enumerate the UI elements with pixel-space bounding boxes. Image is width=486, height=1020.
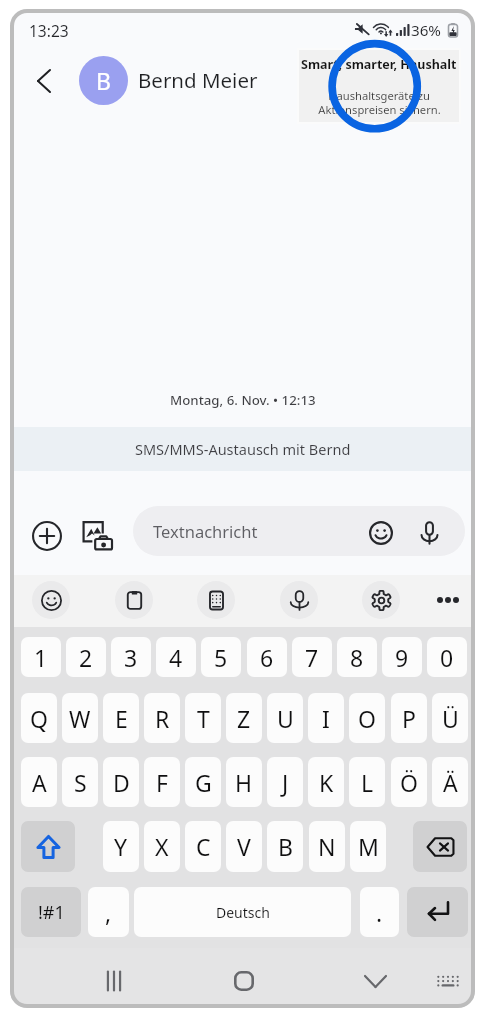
- button[interactable]: L: [349, 757, 385, 807]
- staticText: L: [361, 767, 374, 798]
- button[interactable]: S: [62, 757, 98, 807]
- button[interactable]: Ü: [432, 693, 468, 743]
- staticText: 0: [440, 642, 454, 673]
- staticText: Ä: [443, 767, 458, 798]
- button[interactable]: 2: [66, 637, 106, 677]
- button[interactable]: Voice typing: [280, 581, 318, 619]
- button[interactable]: 5: [201, 637, 241, 677]
- button[interactable]: !#1: [21, 887, 81, 937]
- button[interactable]: 4: [156, 637, 196, 677]
- button[interactable]: C: [185, 821, 221, 872]
- staticText: 2: [79, 642, 93, 673]
- button[interactable]: J: [267, 757, 303, 807]
- button[interactable]: Voice message: [409, 513, 449, 553]
- button[interactable]: Clipboard: [115, 581, 153, 619]
- button[interactable]: R: [144, 693, 180, 743]
- staticText: R: [155, 703, 170, 734]
- button[interactable]: ,: [88, 887, 129, 937]
- staticText: K: [319, 767, 334, 798]
- staticText: V: [237, 831, 251, 862]
- button[interactable]: P: [391, 693, 427, 743]
- staticText: F: [156, 767, 168, 798]
- staticText: N: [318, 831, 336, 862]
- button[interactable]: E: [103, 693, 139, 743]
- staticText: Haushaltsgeräte zu: [328, 88, 430, 103]
- staticText: X: [155, 831, 169, 862]
- button[interactable]: 9: [382, 637, 422, 677]
- button[interactable]: Deutsch: [134, 887, 351, 937]
- staticText: G: [195, 767, 212, 798]
- staticText: 4: [169, 642, 183, 673]
- button[interactable]: 3: [111, 637, 151, 677]
- button[interactable]: 0: [427, 637, 467, 677]
- button[interactable]: K: [308, 757, 344, 807]
- button[interactable]: D: [103, 757, 139, 807]
- button[interactable]: W: [62, 693, 98, 743]
- button[interactable]: More options: [429, 581, 467, 619]
- button[interactable]: Add attachment: [26, 515, 67, 556]
- button[interactable]: Q: [21, 693, 57, 743]
- button[interactable]: Text modes: [197, 581, 235, 619]
- staticText: Bernd Meier: [138, 66, 258, 94]
- button[interactable]: 6: [247, 637, 287, 677]
- button[interactable]: Z: [226, 693, 262, 743]
- button[interactable]: O: [349, 693, 385, 743]
- button[interactable]: Textnachricht: [133, 506, 465, 556]
- button[interactable]: .: [360, 887, 399, 937]
- staticText: 5: [214, 642, 228, 673]
- button[interactable]: Ä: [432, 757, 468, 807]
- button[interactable]: G: [185, 757, 221, 807]
- button[interactable]: B: [79, 56, 128, 105]
- staticText: D: [113, 767, 130, 798]
- button[interactable]: A: [21, 757, 57, 807]
- staticText: Ö: [400, 767, 418, 798]
- button[interactable]: T: [185, 693, 221, 743]
- button[interactable]: X: [144, 821, 180, 872]
- staticText: Textnachricht: [153, 520, 258, 542]
- button[interactable]: V: [226, 821, 262, 872]
- staticText: J: [282, 767, 289, 798]
- staticText: W: [69, 703, 91, 734]
- button[interactable]: Keyboard settings: [362, 581, 400, 619]
- button[interactable]: Home: [222, 959, 266, 1003]
- staticText: 3: [124, 642, 138, 673]
- button[interactable]: Pictures: [77, 515, 118, 556]
- button[interactable]: shift: [21, 821, 75, 872]
- button[interactable]: Change keyboard: [426, 959, 470, 1003]
- staticText: C: [196, 831, 211, 862]
- button[interactable]: Emoji: [361, 513, 401, 553]
- button[interactable]: M: [350, 821, 386, 872]
- button[interactable]: 8: [337, 637, 377, 677]
- staticText: !#1: [38, 900, 65, 925]
- button[interactable]: [299, 50, 459, 122]
- button[interactable]: B: [267, 821, 303, 872]
- staticText: Smart, smarter, Haushalt: [301, 56, 457, 73]
- button[interactable]: 7: [292, 637, 332, 677]
- button[interactable]: I: [308, 693, 344, 743]
- button[interactable]: N: [309, 821, 345, 872]
- staticText: Aktionspreisen sichern.: [318, 102, 441, 117]
- staticText: ,: [105, 897, 112, 928]
- button[interactable]: enter: [407, 887, 468, 937]
- staticText: E: [115, 703, 128, 734]
- staticText: 8: [350, 642, 364, 673]
- button[interactable]: Recent apps: [92, 959, 136, 1003]
- button[interactable]: U: [267, 693, 303, 743]
- button[interactable]: H: [226, 757, 262, 807]
- button[interactable]: Emoji: [32, 581, 70, 619]
- staticText: H: [235, 767, 253, 798]
- staticText: Q: [30, 703, 48, 734]
- staticText: P: [402, 703, 416, 734]
- button[interactable]: F: [144, 757, 180, 807]
- staticText: 6: [260, 642, 274, 673]
- staticText: Z: [237, 703, 251, 734]
- staticText: T: [197, 703, 210, 734]
- button[interactable]: backspace: [413, 821, 467, 872]
- button[interactable]: 1: [21, 637, 61, 677]
- staticText: 13:23: [29, 20, 69, 41]
- staticText: SMS/MMS-Austausch mit Bernd: [135, 439, 351, 459]
- button[interactable]: Back: [21, 58, 66, 103]
- button[interactable]: Y: [103, 821, 139, 872]
- button[interactable]: Ö: [391, 757, 427, 807]
- button[interactable]: Hide keyboard: [353, 959, 397, 1003]
